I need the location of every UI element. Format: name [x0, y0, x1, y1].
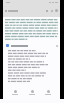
- button[interactable]: Account: [54, 8, 59, 13]
- button[interactable]: Share: [10, 90, 20, 95]
- button[interactable]: Voice search: [49, 8, 54, 13]
- button[interactable]: Google Lens: [44, 8, 49, 13]
- button[interactable]: More options: [54, 43, 59, 48]
- button[interactable]: Export: [43, 90, 53, 95]
- button[interactable]: Back: [3, 8, 8, 13]
- button[interactable]: Save: [27, 90, 37, 95]
